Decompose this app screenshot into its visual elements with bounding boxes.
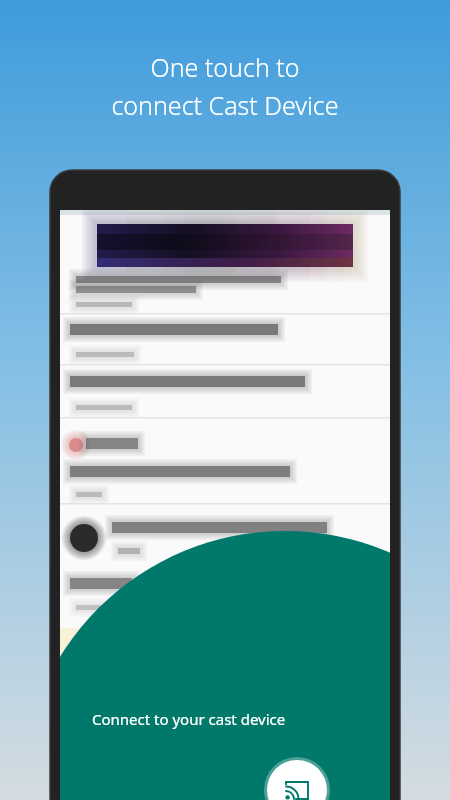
button[interactable]: Connect to cast device [263, 756, 331, 800]
button[interactable]: Connect to your cast device [92, 709, 286, 729]
staticText: One touch to connect Cast Device [111, 50, 339, 122]
staticText: Connect to your cast device [92, 709, 286, 729]
